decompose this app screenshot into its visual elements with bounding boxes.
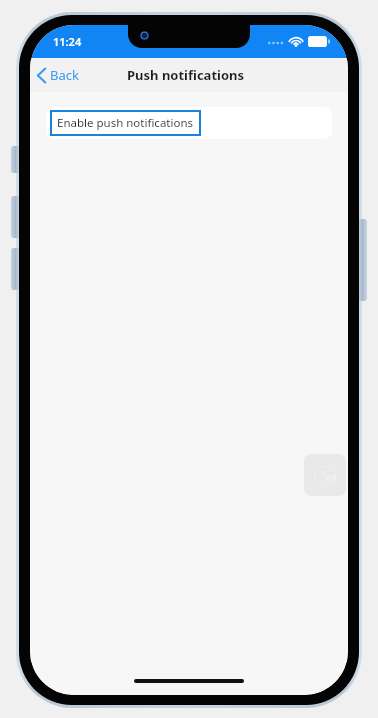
staticText: Push notifications — [127, 66, 245, 84]
button[interactable]: Back — [30, 62, 89, 88]
staticText: Enable push notifications — [57, 115, 194, 131]
button[interactable]: Enable push notifications — [46, 107, 332, 139]
staticText: Back — [50, 66, 79, 84]
staticText: 11:24 — [53, 34, 82, 49]
